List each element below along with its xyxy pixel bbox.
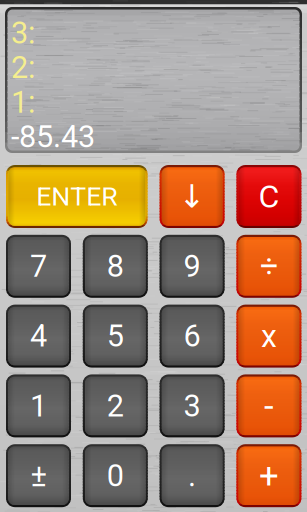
button[interactable]: ±: [6, 444, 71, 507]
button[interactable]: -: [236, 374, 301, 437]
button[interactable]: .: [160, 444, 225, 507]
staticText: 3:: [11, 15, 35, 51]
button[interactable]: ÷: [236, 235, 301, 298]
button[interactable]: 6: [160, 305, 225, 368]
staticText: 2:: [11, 50, 35, 85]
button[interactable]: 8: [83, 235, 148, 298]
staticText: ↓: [179, 178, 206, 215]
staticText: 3: [184, 388, 201, 424]
staticText: 0: [107, 458, 124, 494]
staticText: ENTER: [36, 181, 117, 212]
staticText: 1: [30, 388, 47, 424]
staticText: -: [264, 386, 274, 426]
button[interactable]: ENTER: [6, 165, 148, 228]
staticText: -85.43: [11, 119, 95, 155]
button[interactable]: 9: [160, 235, 225, 298]
button[interactable]: x: [236, 305, 301, 368]
button[interactable]: 2: [83, 374, 148, 437]
staticText: 6: [184, 318, 201, 354]
staticText: 5: [107, 318, 124, 354]
staticText: 2: [107, 388, 124, 424]
staticText: ÷: [260, 248, 278, 285]
staticText: +: [259, 455, 279, 496]
staticText: 1:: [11, 84, 35, 120]
staticText: 4: [30, 318, 47, 354]
staticText: C: [258, 178, 279, 215]
button[interactable]: 4: [6, 305, 71, 368]
staticText: ±: [30, 458, 46, 494]
button[interactable]: 7: [6, 235, 71, 298]
button[interactable]: +: [236, 444, 301, 507]
staticText: x: [261, 317, 277, 355]
button[interactable]: ↓: [160, 165, 225, 228]
staticText: 7: [30, 248, 47, 284]
button[interactable]: 5: [83, 305, 148, 368]
button[interactable]: 0: [83, 444, 148, 507]
staticText: .: [188, 458, 196, 494]
staticText: 8: [107, 248, 124, 284]
button[interactable]: C: [236, 165, 301, 228]
button[interactable]: 3: [160, 374, 225, 437]
button[interactable]: 1: [6, 374, 71, 437]
staticText: 9: [184, 248, 201, 284]
